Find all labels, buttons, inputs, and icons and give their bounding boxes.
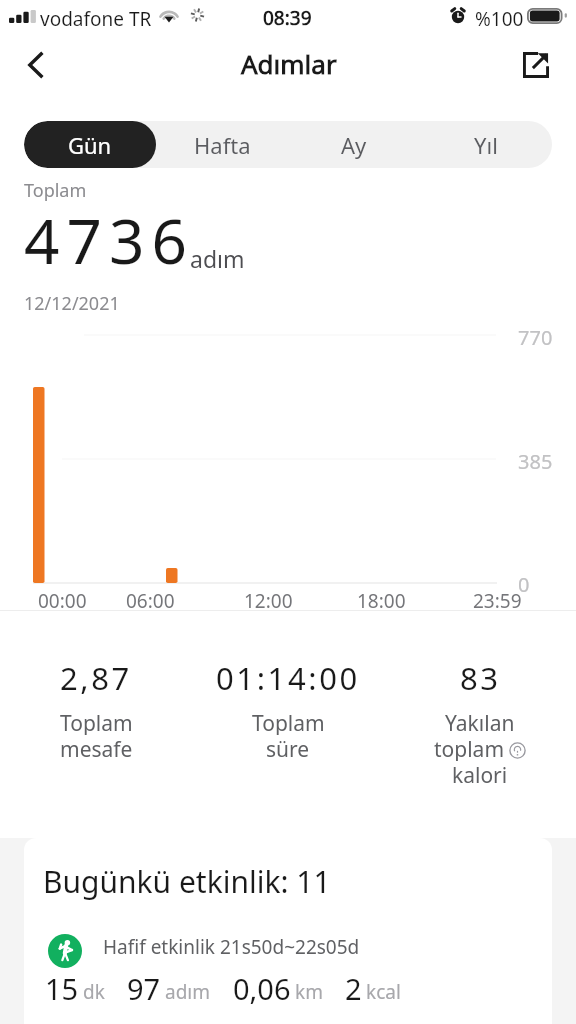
staticText: 12/12/2021 xyxy=(24,291,120,316)
staticText: dk xyxy=(83,979,105,1005)
button[interactable]: 01:14:00 xyxy=(192,657,384,761)
staticText: 08:39 xyxy=(263,5,312,31)
staticText: 0,06 xyxy=(233,969,291,1008)
button[interactable]: Yıl xyxy=(420,121,552,168)
staticText: Yakılan xyxy=(445,709,515,735)
staticText: Adımlar xyxy=(241,46,337,81)
staticText: Toplam xyxy=(60,709,133,735)
button[interactable]: Back xyxy=(12,41,60,89)
staticText: 770 xyxy=(518,324,553,351)
staticText: 0 xyxy=(518,571,530,598)
staticText: 01:14:00 xyxy=(216,657,360,699)
staticText: kalori xyxy=(452,761,508,787)
staticText: 18:00 xyxy=(357,588,406,614)
staticText: 83 xyxy=(460,657,501,699)
staticText: 15 xyxy=(45,969,79,1008)
button[interactable]: 2,87 xyxy=(0,657,192,761)
staticText: 12:00 xyxy=(244,588,293,614)
staticText: 385 xyxy=(518,448,553,475)
staticText: toplam xyxy=(434,735,505,761)
staticText: 06:00 xyxy=(126,588,175,614)
staticText: 4736 xyxy=(24,198,194,282)
staticText: kcal xyxy=(366,979,401,1005)
staticText: Gün xyxy=(68,130,112,160)
staticText: mesafe xyxy=(60,735,133,761)
staticText: 2 xyxy=(345,969,362,1008)
button[interactable]: Ay xyxy=(288,121,420,168)
staticText: adım xyxy=(165,979,211,1005)
staticText: Hafif etkinlik 21s50d~22s05d xyxy=(103,934,360,960)
staticText: süre xyxy=(266,735,310,761)
staticText: adım xyxy=(190,243,245,274)
staticText: 23:59 xyxy=(473,588,522,614)
staticText: Ay xyxy=(341,130,367,160)
button[interactable]: Gün xyxy=(24,121,156,168)
staticText: Bugünkü etkinlik: 11 xyxy=(43,861,331,902)
staticText: Toplam xyxy=(252,709,325,735)
staticText: Toplam xyxy=(24,178,87,203)
staticText: Hafta xyxy=(194,130,251,160)
staticText: %100 xyxy=(475,6,524,32)
button[interactable]: Share xyxy=(512,41,560,89)
button[interactable]: 83 xyxy=(384,657,576,787)
button[interactable]: Bugünkü etkinlik: 11 xyxy=(24,838,552,1024)
staticText: 97 xyxy=(127,969,161,1008)
staticText: Yıl xyxy=(474,130,498,160)
staticText: 00:00 xyxy=(38,588,87,614)
staticText: km xyxy=(295,979,323,1005)
staticText: 2,87 xyxy=(60,657,132,699)
button[interactable]: Hafta xyxy=(156,121,288,168)
staticText: vodafone TR xyxy=(40,6,152,32)
